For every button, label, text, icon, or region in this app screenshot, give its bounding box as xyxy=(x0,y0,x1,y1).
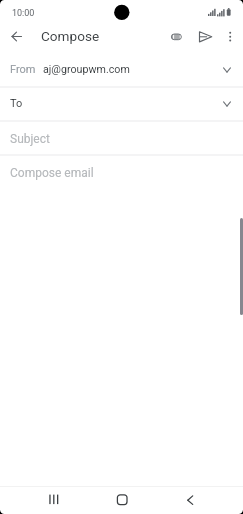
staticText: 10:00 xyxy=(12,8,35,19)
button[interactable]: From xyxy=(0,52,243,86)
button[interactable]: Navigate up xyxy=(4,24,30,50)
staticText: Subject xyxy=(10,132,50,146)
button[interactable]: Home xyxy=(108,486,136,514)
staticText: Compose email xyxy=(10,166,94,180)
button[interactable]: To xyxy=(0,86,243,120)
staticText: Compose xyxy=(41,28,100,44)
staticText: To xyxy=(10,97,23,110)
button[interactable]: Compose email xyxy=(0,154,243,188)
staticText: aj@groupwm.com xyxy=(43,63,130,76)
button[interactable]: Attach file xyxy=(164,24,188,48)
button[interactable]: Back xyxy=(176,486,204,514)
button[interactable]: Recent apps xyxy=(40,486,68,514)
button[interactable]: Subject xyxy=(0,120,243,154)
button[interactable]: More options xyxy=(220,24,242,46)
button[interactable]: Send xyxy=(192,24,216,48)
staticText: From xyxy=(10,63,36,76)
